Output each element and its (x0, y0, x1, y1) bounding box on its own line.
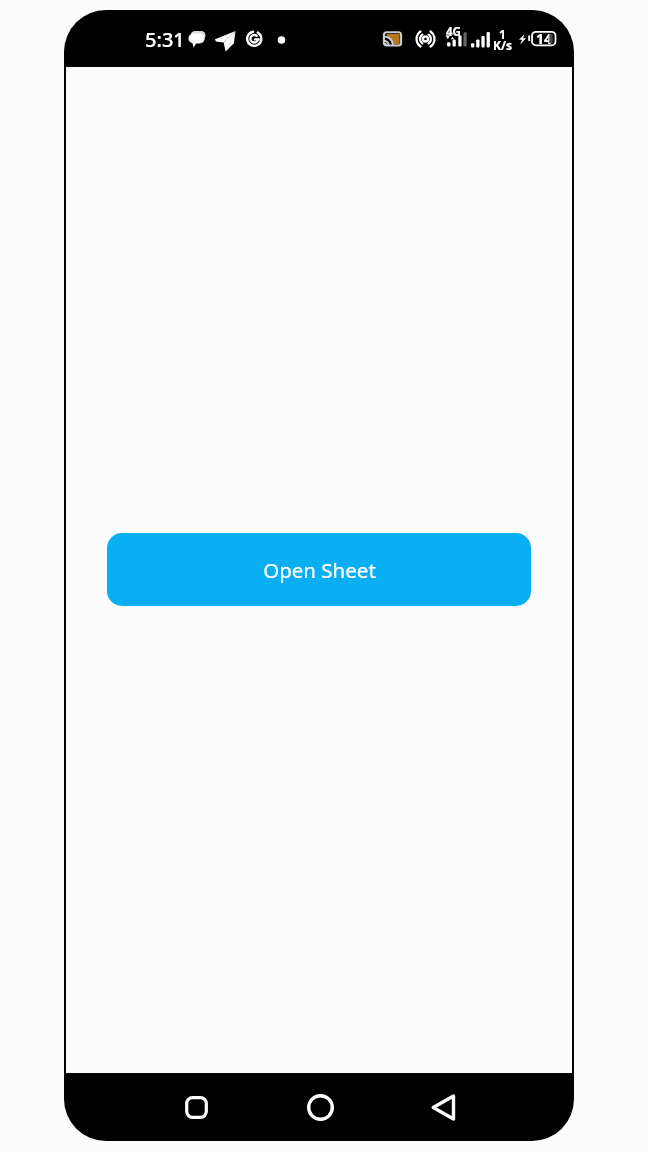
staticText: Open Sheet (263, 556, 376, 584)
button[interactable]: Open Sheet (107, 533, 531, 606)
staticText: 4G (446, 24, 461, 40)
staticText: K/s (493, 37, 512, 53)
staticText: 14 (536, 29, 553, 48)
button[interactable]: Home (292, 1079, 348, 1135)
staticText: 1 (499, 26, 506, 42)
button[interactable]: Recents (168, 1079, 224, 1135)
staticText: 5:31 (145, 26, 185, 53)
button[interactable]: Back (415, 1079, 471, 1135)
